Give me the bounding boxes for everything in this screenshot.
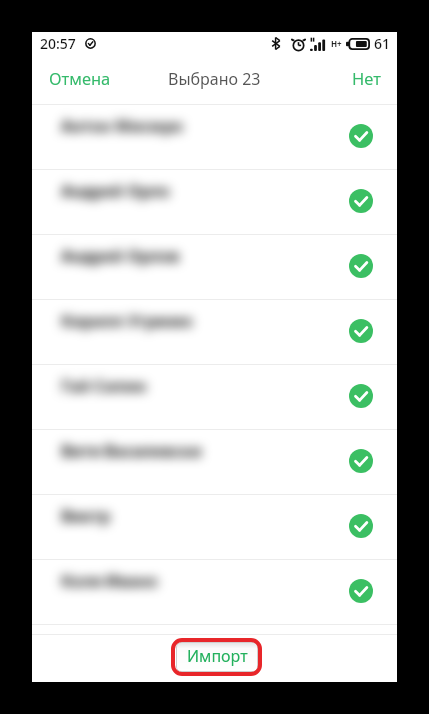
staticText: Андрей Орло: [61, 180, 170, 202]
button[interactable]: Импорт: [176, 642, 258, 672]
staticText: Витя Василевски: [61, 440, 202, 462]
button[interactable]: Selected: [349, 514, 373, 538]
button[interactable]: Андрей Орло: [32, 170, 397, 234]
button[interactable]: Selected: [349, 124, 373, 148]
staticText: Антон Мисюро: [61, 115, 184, 137]
staticText: Андрей Орлов: [61, 245, 180, 267]
button[interactable]: Selected: [349, 189, 373, 213]
button[interactable]: Витя Василевски: [32, 430, 397, 494]
staticText: Нет: [352, 67, 381, 89]
button[interactable]: Андрей Орлов: [32, 235, 397, 299]
button[interactable]: Selected: [349, 319, 373, 343]
staticText: Выбрано 23: [168, 68, 261, 90]
staticText: Коля Ивано: [61, 570, 158, 592]
button[interactable]: Коля Ивано: [32, 560, 397, 624]
button[interactable]: Selected: [349, 449, 373, 473]
button[interactable]: Виктр: [32, 495, 397, 559]
staticText: H+: [331, 38, 342, 49]
button[interactable]: Selected: [349, 254, 373, 278]
staticText: Кирилл Угрюмо: [61, 310, 193, 332]
button[interactable]: Selected: [349, 579, 373, 603]
staticText: Виктр: [61, 505, 111, 527]
staticText: 20:57: [40, 34, 76, 53]
button[interactable]: Selected: [349, 384, 373, 408]
staticText: 61: [374, 34, 391, 53]
button[interactable]: Нет: [340, 58, 397, 98]
button[interactable]: Антон Мисюро: [32, 105, 397, 169]
staticText: Гай Силин: [61, 375, 147, 397]
staticText: Импорт: [187, 645, 248, 667]
button[interactable]: Кирилл Угрюмо: [32, 300, 397, 364]
button[interactable]: Гай Силин: [32, 365, 397, 429]
button[interactable]: Отмена: [32, 58, 123, 98]
staticText: Отмена: [49, 67, 111, 89]
